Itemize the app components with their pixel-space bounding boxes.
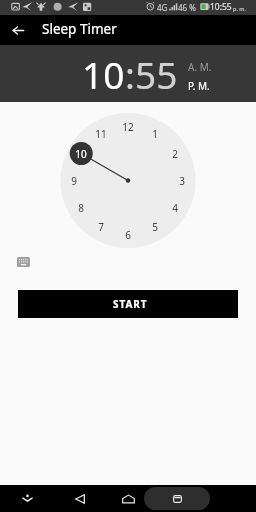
staticText: 4G xyxy=(157,2,168,13)
staticText: 6 xyxy=(125,228,131,242)
button[interactable]: 4 xyxy=(164,199,186,217)
staticText: : xyxy=(125,49,135,99)
staticText: 8 xyxy=(78,201,84,215)
staticText: 5 xyxy=(152,220,158,234)
button[interactable]: Home xyxy=(114,487,142,510)
button[interactable]: 9 xyxy=(63,172,85,190)
staticText: 9 xyxy=(71,174,77,188)
button[interactable]: 55 xyxy=(135,49,178,99)
button[interactable]: Back xyxy=(66,487,94,510)
button[interactable]: 10 xyxy=(82,49,125,99)
button[interactable]: P. M. xyxy=(188,79,210,93)
button[interactable]: 7 xyxy=(90,218,112,236)
button[interactable]: 1 xyxy=(144,125,166,143)
button[interactable]: 12 xyxy=(117,118,139,136)
staticText: 10 xyxy=(75,147,87,161)
button[interactable]: Recents xyxy=(144,487,210,510)
button[interactable]: 3 xyxy=(171,172,193,190)
staticText: 1 xyxy=(152,127,158,141)
button[interactable]: Back xyxy=(3,15,33,45)
staticText: Sleep Timer xyxy=(42,20,117,38)
button[interactable]: Hide keyboard xyxy=(13,487,41,510)
staticText: p. m. xyxy=(233,5,246,12)
button[interactable]: 2 xyxy=(164,145,186,163)
staticText: 3 xyxy=(179,174,185,188)
staticText: 4 xyxy=(172,201,178,215)
button[interactable]: Switch to text input xyxy=(12,253,34,271)
staticText: 11 xyxy=(95,127,107,141)
button[interactable]: START xyxy=(18,290,238,318)
staticText: 7 xyxy=(98,220,104,234)
button[interactable]: 6 xyxy=(117,226,139,244)
button[interactable]: 5 xyxy=(144,218,166,236)
staticText: START xyxy=(113,297,148,311)
button[interactable]: 8 xyxy=(70,199,92,217)
staticText: 10:55 xyxy=(210,1,232,13)
staticText: 2 xyxy=(172,147,178,161)
staticText: 12 xyxy=(122,120,134,134)
button[interactable]: A. M. xyxy=(188,60,212,74)
button[interactable]: 11 xyxy=(90,125,112,143)
button[interactable]: 10 xyxy=(70,145,92,163)
staticText: 46 % xyxy=(178,2,196,13)
